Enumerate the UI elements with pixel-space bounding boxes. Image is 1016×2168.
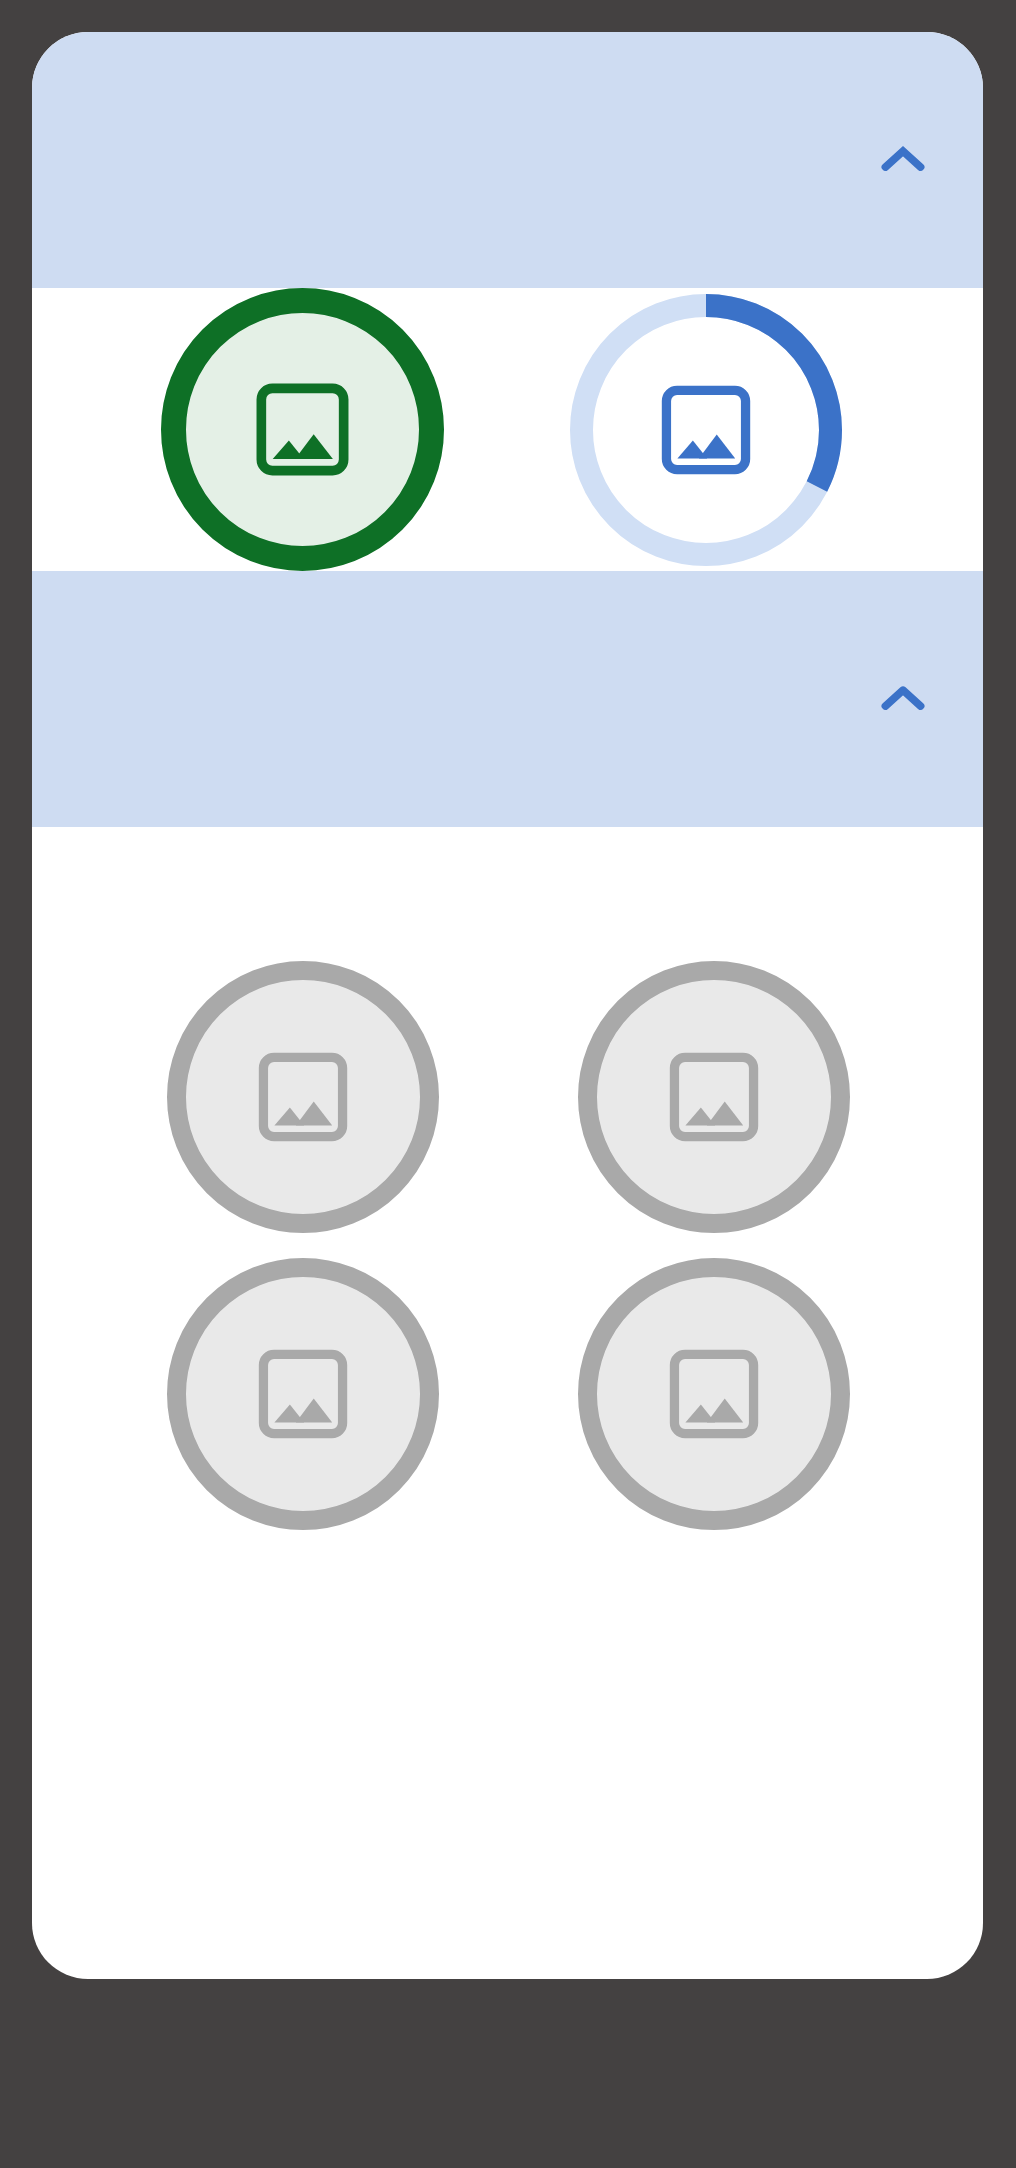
button[interactable]: Completed item xyxy=(159,288,446,571)
button[interactable]: Loading item xyxy=(570,294,842,566)
button[interactable]: Collapse xyxy=(871,128,935,192)
button[interactable]: Collapse xyxy=(871,667,935,731)
button[interactable]: Placeholder item xyxy=(167,1258,439,1530)
button[interactable]: Placeholder item xyxy=(167,961,439,1233)
button[interactable]: Collapse xyxy=(32,32,983,288)
button[interactable]: Collapse xyxy=(32,571,983,827)
button[interactable]: Placeholder item xyxy=(578,1258,850,1530)
button[interactable]: Placeholder item xyxy=(578,961,850,1233)
